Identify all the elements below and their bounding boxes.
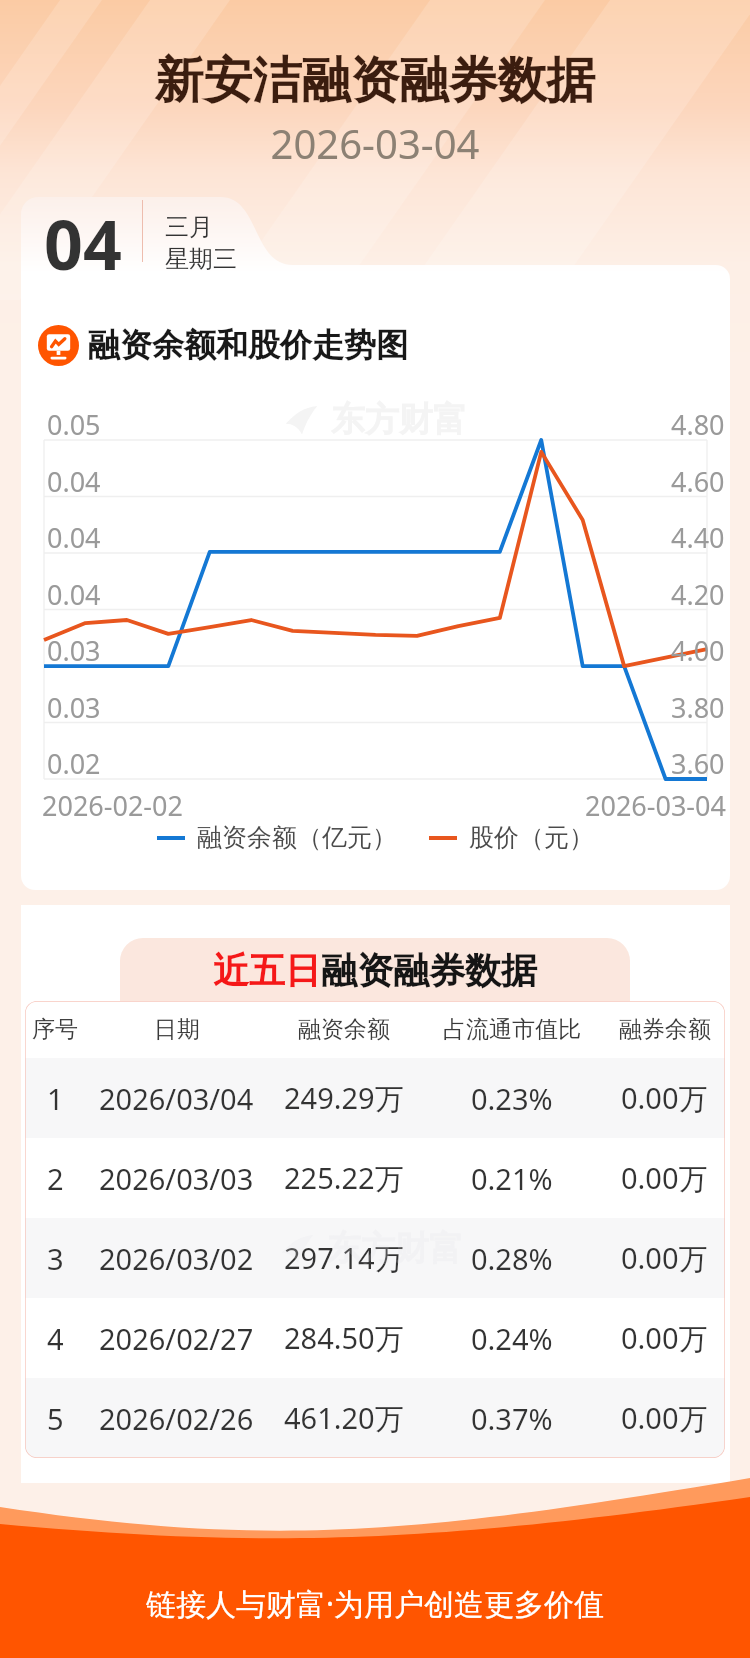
staticText: 3 (47, 1239, 64, 1278)
staticText: 4.20 (671, 576, 725, 613)
staticText: 近五日融资融券数据 (213, 948, 537, 993)
staticText: 0.00万 (621, 1238, 708, 1278)
staticText: 225.22万 (284, 1158, 404, 1198)
staticText: 新安洁融资融券数据 (0, 50, 750, 112)
staticText: 297.14万 (284, 1238, 404, 1278)
staticText: 日期 (154, 1015, 200, 1044)
staticText: 股价（元） (469, 822, 594, 853)
staticText: 0.21% (471, 1159, 553, 1198)
staticText: 284.50万 (284, 1318, 404, 1358)
button[interactable]: 5 (25, 1378, 725, 1458)
staticText: 融资余额 (298, 1015, 390, 1044)
staticText: 0.04 (47, 576, 101, 613)
staticText: 融资余额和股价走势图 (88, 325, 408, 365)
staticText: 4.60 (671, 463, 725, 500)
staticText: 东方财富 (327, 1227, 463, 1270)
staticText: 2026/03/02 (99, 1239, 254, 1278)
staticText: 2026-03-04 (0, 116, 750, 170)
staticText: 0.23% (471, 1079, 553, 1118)
staticText: 0.05 (47, 406, 101, 443)
button[interactable]: 4 (25, 1298, 725, 1378)
staticText: 1 (47, 1079, 64, 1118)
staticText: 三月 (165, 212, 213, 242)
staticText: 0.04 (47, 463, 101, 500)
staticText: 0.00万 (621, 1158, 708, 1198)
button[interactable]: 3 (25, 1218, 725, 1298)
staticText: 0.03 (47, 689, 101, 726)
staticText: 0.03 (47, 632, 101, 669)
staticText: 0.04 (47, 519, 101, 556)
staticText: 0.02 (47, 745, 101, 782)
staticText: 链接人与财富·为用户创造更多价值 (0, 1583, 750, 1624)
staticText: 3.60 (671, 745, 725, 782)
staticText: 0.00万 (621, 1398, 708, 1438)
staticText: 4.00 (671, 632, 725, 669)
staticText: 3.80 (671, 689, 725, 726)
staticText: 0.37% (471, 1399, 553, 1438)
staticText: 4 (47, 1319, 64, 1358)
staticText: 0.00万 (621, 1078, 708, 1118)
staticText: 东方财富 (331, 398, 467, 441)
staticText: 融资余额（亿元） (197, 822, 397, 853)
staticText: 2026-02-02 (42, 787, 183, 824)
staticText: 2026-03-04 (585, 787, 726, 824)
staticText: 序号 (32, 1015, 78, 1044)
staticText: 0.00万 (621, 1318, 708, 1358)
staticText: 04 (44, 197, 122, 290)
button[interactable]: 2 (25, 1138, 725, 1218)
button[interactable]: 1 (25, 1058, 725, 1138)
staticText: 2 (47, 1159, 64, 1198)
staticText: 249.29万 (284, 1078, 404, 1118)
staticText: 2026/03/03 (99, 1159, 254, 1198)
staticText: 0.24% (471, 1319, 553, 1358)
staticText: 4.80 (671, 406, 725, 443)
staticText: 2026/02/27 (99, 1319, 254, 1358)
staticText: 占流通市值比 (443, 1015, 581, 1044)
other: 走势图 (38, 325, 79, 366)
staticText: 融券余额 (619, 1015, 711, 1044)
staticText: 2026/02/26 (99, 1399, 254, 1438)
staticText: 2026/03/04 (99, 1079, 254, 1118)
staticText: 5 (47, 1399, 64, 1438)
staticText: 461.20万 (284, 1398, 404, 1438)
staticText: 0.28% (471, 1239, 553, 1278)
staticText: 星期三 (165, 244, 237, 274)
staticText: 4.40 (671, 519, 725, 556)
